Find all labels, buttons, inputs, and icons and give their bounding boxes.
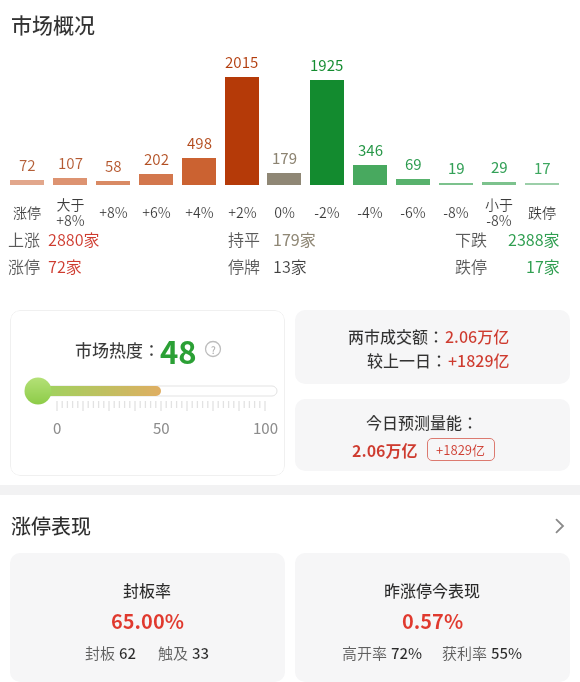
staticText: 2880家 [48,227,100,250]
staticText: 封板率 [123,578,172,601]
button[interactable]: 封板率 [10,553,285,682]
staticText: 市场热度： [75,337,160,362]
staticText: 55% [491,642,523,664]
staticText: 下跌 [455,227,488,250]
staticText: 19 [448,157,465,179]
staticText: 跌停 [455,254,488,277]
staticText: 上涨 [8,227,41,250]
staticText: 市场概况 [11,9,95,39]
staticText: ? [211,342,216,356]
staticText: 触及 [158,642,192,664]
staticText: 100 [253,417,278,439]
staticText: 58 [105,155,122,177]
button[interactable]: 市场热度： [10,310,285,476]
staticText: 高开率 [342,642,391,664]
staticText: 涨停表现 [11,511,91,540]
staticText: 346 [358,139,383,161]
staticText: 涨停 [13,202,41,222]
staticText: +6% [142,202,171,222]
staticText: 179家 [273,227,316,250]
button[interactable]: 今日预测量能： [295,399,570,471]
staticText: 13家 [273,254,307,277]
staticText: 2015 [225,51,259,73]
staticText: -4% [357,202,383,222]
staticText: 持平 [228,227,261,250]
staticText: 33 [192,642,210,664]
staticText: 封板 [85,642,119,664]
staticText: -2% [314,202,340,222]
staticText: +4% [185,202,214,222]
staticText: 72% [391,642,423,664]
staticText: 大于 +8% [56,194,85,230]
staticText: 0% [274,202,295,222]
staticText: 17家 [526,254,560,277]
staticText: -8% [443,202,469,222]
staticText: -6% [400,202,426,222]
staticText: 0.57% [402,606,464,635]
staticText: 202 [144,148,169,170]
staticText: 498 [187,132,212,154]
staticText: 2.06万亿 [445,324,510,347]
staticText: 72 [19,154,36,176]
staticText: 50 [153,417,170,439]
staticText: +1829亿 [436,440,486,459]
button[interactable]: 昨涨停今表现 [295,553,570,682]
staticText: 179 [272,147,297,169]
staticText: +8% [99,202,128,222]
staticText: 昨涨停今表现 [384,578,481,601]
staticText: 48 [160,328,197,370]
staticText: 62 [119,642,137,664]
staticText: 今日预测量能： [366,410,479,433]
staticText: 0 [53,417,62,439]
staticText: 涨停 [8,254,41,277]
staticText: 小于 -8% [485,194,513,230]
staticText: 29 [491,156,508,178]
staticText: +1829亿 [448,348,510,371]
button[interactable]: 涨停表现 [0,511,580,540]
staticText: +2% [228,202,257,222]
staticText: 65.00% [111,606,184,635]
button[interactable]: 两市成交额： [295,310,570,384]
staticText: 2388家 [508,227,560,250]
staticText: 107 [58,152,83,174]
staticText: 69 [405,153,422,175]
staticText: 两市成交额： [348,324,445,347]
staticText: 获利率 [442,642,491,664]
staticText: 较上一日： [367,348,448,371]
staticText: 停牌 [228,254,261,277]
staticText: 17 [534,157,551,179]
staticText: 72家 [48,254,82,277]
staticText: 跌停 [528,202,556,222]
staticText: 1925 [310,54,344,76]
staticText: 2.06万亿 [352,438,418,461]
